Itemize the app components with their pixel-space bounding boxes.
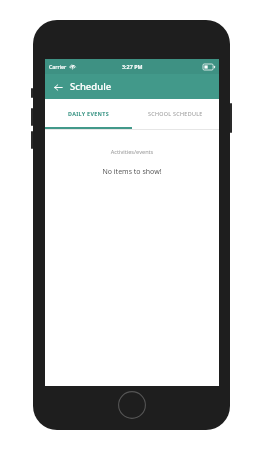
button[interactable]: DAILY EVENTS <box>45 99 132 127</box>
staticText: SCHOOL SCHEDULE <box>148 110 203 117</box>
staticText: Activities/events <box>45 148 219 156</box>
button[interactable]: SCHOOL SCHEDULE <box>132 99 219 127</box>
staticText: No items to show! <box>45 167 219 177</box>
staticText: Schedule <box>70 80 112 93</box>
button[interactable]: Back <box>49 78 67 96</box>
staticText: DAILY EVENTS <box>68 110 109 117</box>
staticText: Carrier <box>49 63 67 70</box>
staticText: 3:27 PM <box>122 63 143 70</box>
